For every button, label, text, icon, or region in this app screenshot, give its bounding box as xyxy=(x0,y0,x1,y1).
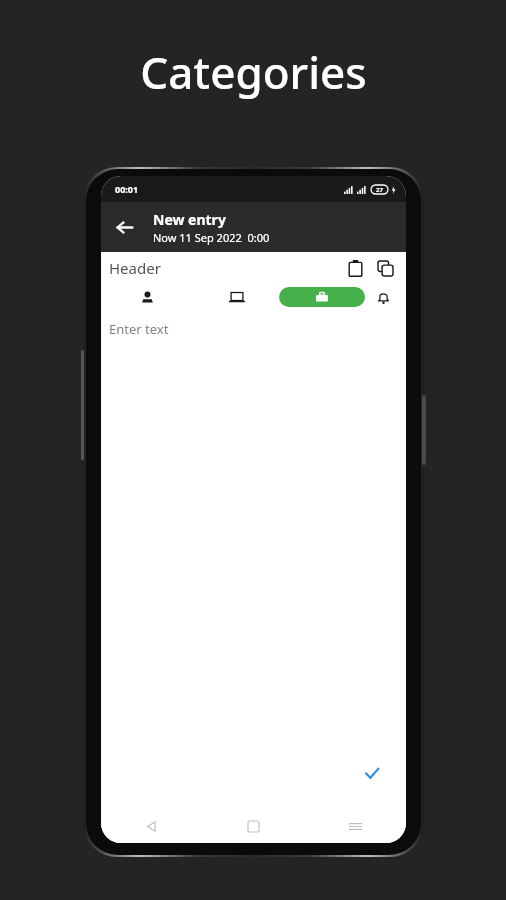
staticText: Categories xyxy=(140,42,367,102)
button[interactable]: Person category xyxy=(137,287,157,307)
button[interactable]: Copy xyxy=(370,253,400,283)
staticText: Now 11 Sep 2022 0:00 xyxy=(153,230,270,245)
button[interactable]: Back xyxy=(101,202,147,252)
button[interactable]: Save xyxy=(350,751,394,795)
staticText: 00:01 xyxy=(115,183,139,195)
staticText: Header xyxy=(109,258,161,278)
button[interactable]: Recents xyxy=(304,809,406,843)
staticText: New entry xyxy=(153,210,226,229)
button[interactable]: Back xyxy=(101,809,202,843)
button[interactable]: Home xyxy=(202,809,304,843)
button[interactable]: Work category selected xyxy=(279,287,365,307)
button[interactable]: Reminder category xyxy=(373,287,393,307)
button[interactable]: Computer category xyxy=(227,287,247,307)
button[interactable]: Paste xyxy=(340,253,370,283)
staticText: 27 xyxy=(376,186,383,194)
staticText: Enter text xyxy=(109,320,169,338)
